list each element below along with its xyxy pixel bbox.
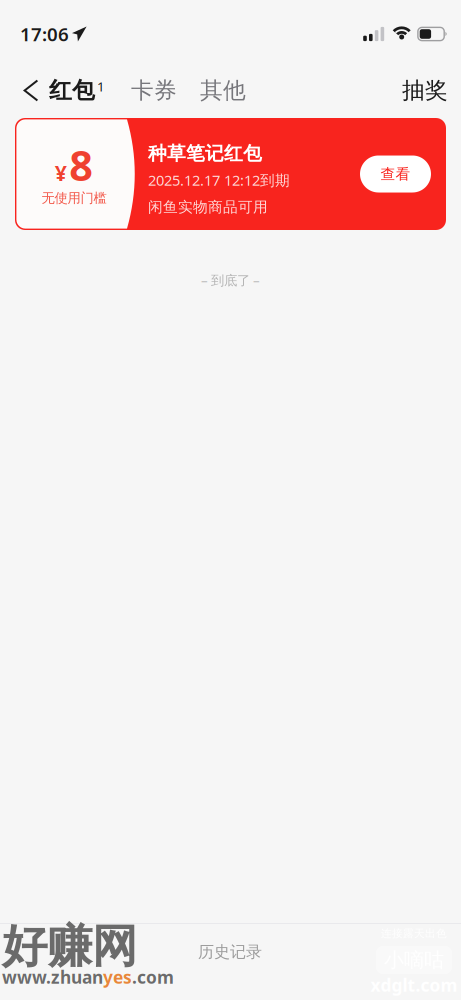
staticText: 无使用门槛	[41, 190, 106, 206]
button[interactable]: Back	[13, 70, 49, 110]
staticText: 其他	[200, 77, 246, 104]
button[interactable]: 其他	[200, 70, 246, 110]
staticText: 卡券	[131, 77, 177, 104]
button[interactable]: 卡券	[131, 70, 177, 110]
staticText: 查看	[380, 165, 410, 183]
staticText: 8	[69, 138, 93, 192]
staticText: 闲鱼实物商品可用	[148, 198, 268, 216]
staticText: 好赚网	[2, 919, 137, 974]
staticText: ¥	[55, 159, 67, 187]
staticText: – 到底了 –	[201, 271, 260, 289]
button[interactable]: 历史记录	[198, 941, 262, 963]
staticText: www.zhuan	[2, 965, 103, 988]
staticText: 红包	[49, 77, 95, 104]
staticText: 2025.12.17 12:12到期	[148, 170, 290, 190]
staticText: xdglt.com	[370, 973, 457, 996]
staticText: 抽奖	[402, 77, 448, 104]
button[interactable]: 种草笔记红包	[15, 118, 446, 230]
staticText: yes	[103, 965, 132, 988]
button[interactable]: 抽奖	[402, 70, 448, 110]
staticText: 历史记录	[198, 942, 262, 962]
staticText: 17:06	[20, 22, 69, 46]
staticText: 种草笔记红包	[148, 142, 262, 165]
staticText: .com	[132, 965, 174, 988]
staticText: 1	[97, 78, 105, 95]
button[interactable]: 红包	[49, 70, 105, 110]
